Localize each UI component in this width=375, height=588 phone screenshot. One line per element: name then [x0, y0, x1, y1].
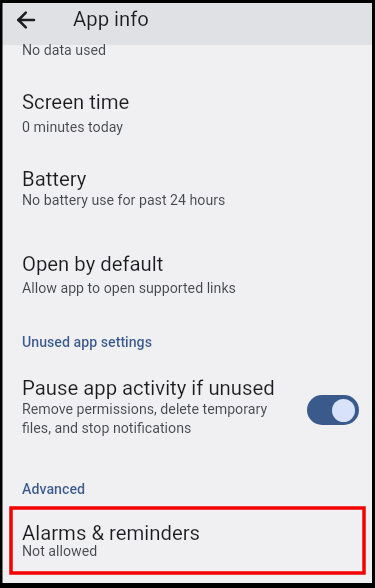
staticText: Not allowed [22, 543, 98, 560]
staticText: Remove permissions, delete temporary [22, 401, 268, 418]
staticText: Alarms & reminders [22, 521, 201, 545]
button[interactable]: Battery [0, 152, 375, 228]
staticText: 0 minutes today [22, 119, 123, 136]
button[interactable] [14, 8, 38, 32]
button[interactable]: Alarms & reminders [0, 508, 375, 573]
staticText: Allow app to open supported links [22, 280, 236, 297]
button[interactable] [307, 395, 359, 425]
staticText: Screen time [22, 90, 130, 114]
button[interactable]: Screen time [0, 76, 375, 148]
button[interactable]: Open by default [0, 238, 375, 314]
staticText: Advanced [22, 481, 86, 498]
staticText: files, and stop notifications [22, 420, 192, 437]
staticText: Battery [22, 167, 87, 191]
staticText: Pause app activity if unused [22, 376, 275, 400]
staticText: No battery use for past 24 hours [22, 192, 226, 209]
staticText: No data used [22, 42, 106, 59]
button[interactable]: Pause app activity if unused [0, 362, 375, 452]
staticText: Open by default [22, 252, 164, 276]
staticText: Unused app settings [22, 334, 152, 351]
button[interactable]: No data used [0, 45, 375, 75]
staticText: App info [73, 7, 149, 31]
